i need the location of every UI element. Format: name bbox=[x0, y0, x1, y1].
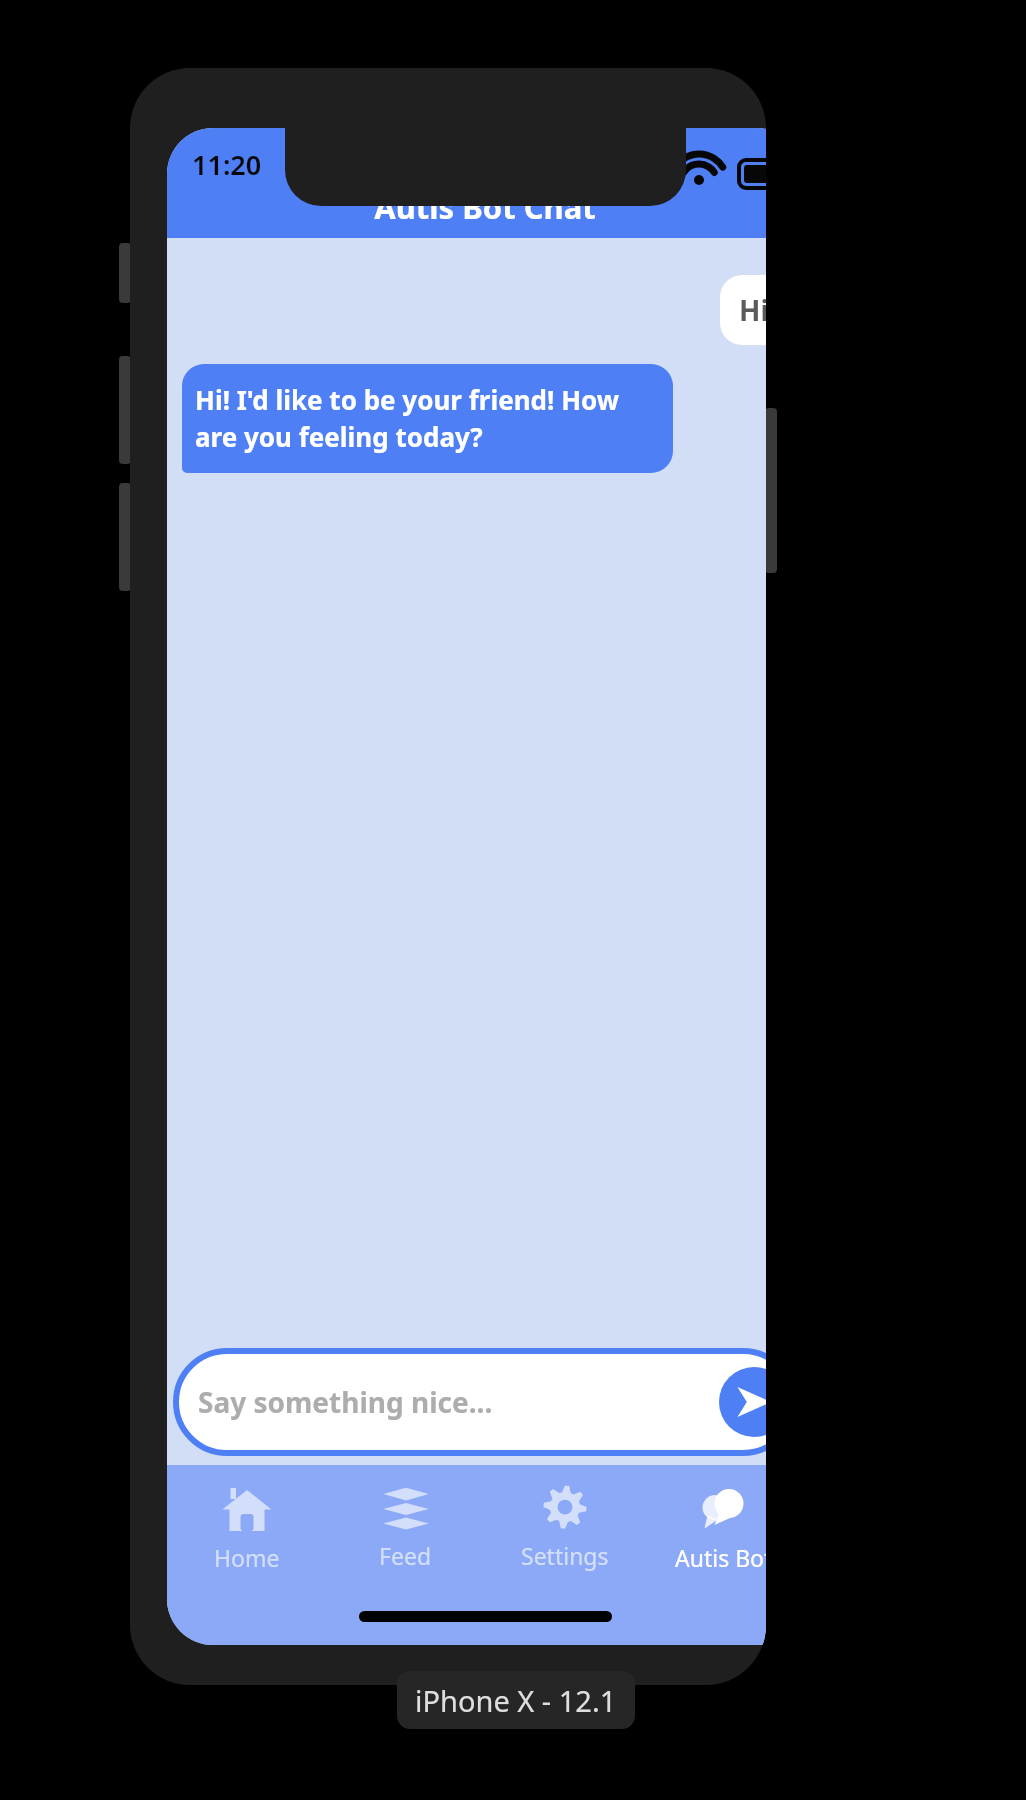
button[interactable]: Settings bbox=[485, 1479, 644, 1577]
staticText: Autis Bot bbox=[675, 1542, 766, 1573]
staticText: Hi! I'd like to be your friend! How are … bbox=[195, 382, 660, 455]
button[interactable]: Send bbox=[719, 1367, 766, 1437]
button[interactable]: Hi! I'd like to be your friend! How are … bbox=[182, 364, 673, 473]
button[interactable]: Autis Bot bbox=[644, 1479, 766, 1579]
staticText: iPhone X - 12.1 bbox=[415, 1681, 617, 1720]
button[interactable]: Hi bbox=[720, 275, 766, 345]
staticText: Feed bbox=[379, 1540, 432, 1571]
staticText: Settings bbox=[521, 1540, 609, 1571]
staticText: Hi bbox=[739, 291, 766, 329]
button[interactable] bbox=[176, 1351, 766, 1453]
staticText: Say something nice... bbox=[198, 1383, 493, 1421]
staticText: Home bbox=[214, 1542, 280, 1573]
button[interactable]: iPhone X - 12.1 bbox=[397, 1671, 635, 1729]
staticText: 11:20 bbox=[192, 146, 262, 183]
staticText: Autis Bot Chat bbox=[167, 186, 766, 228]
button[interactable]: Home bbox=[167, 1479, 326, 1579]
button[interactable]: Feed bbox=[326, 1479, 485, 1577]
